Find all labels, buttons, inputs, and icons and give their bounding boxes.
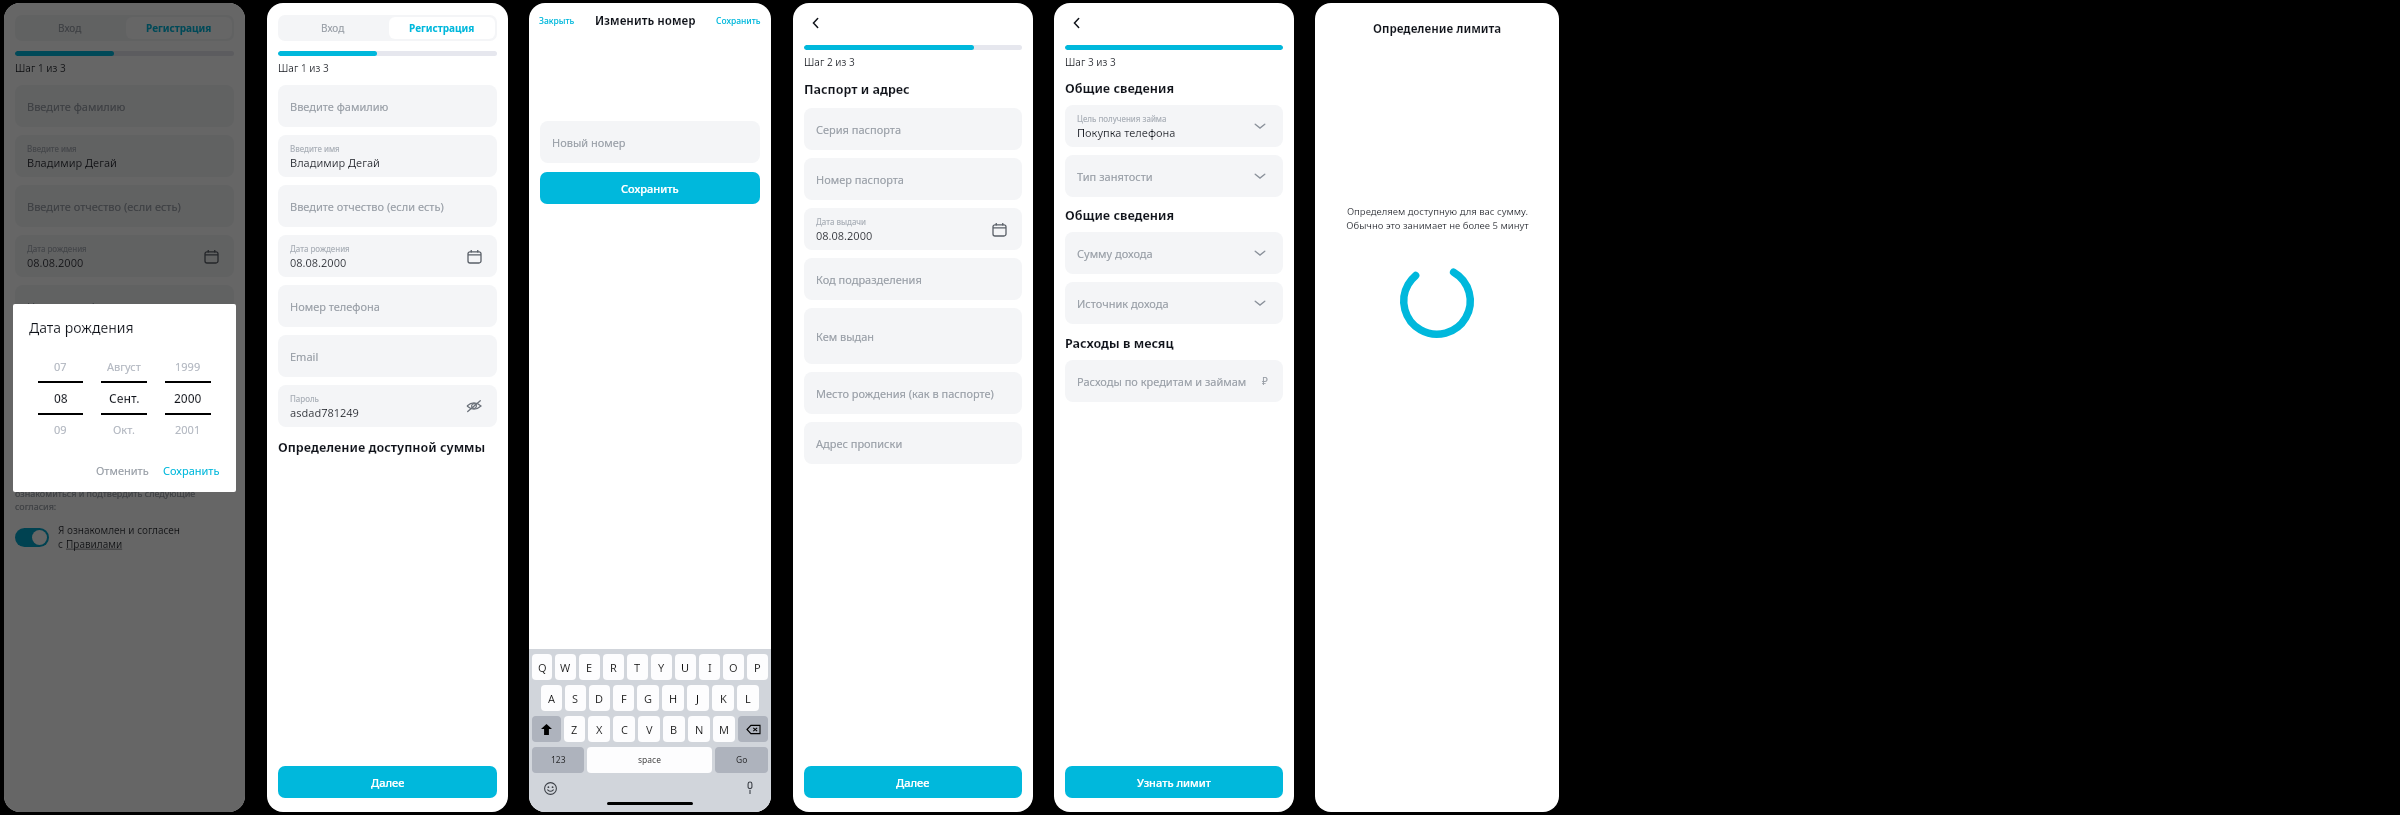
button[interactable]: Выбрать дату: [200, 245, 222, 267]
staticText: 123: [551, 754, 566, 766]
button[interactable]: Пароль: [278, 385, 497, 427]
button[interactable]: B: [663, 716, 685, 742]
button[interactable]: A: [541, 685, 562, 711]
button[interactable]: Раскрыть список: [1249, 242, 1271, 264]
staticText: Шаг 1 из 3: [15, 61, 66, 75]
button[interactable]: Далее: [278, 766, 497, 798]
button[interactable]: Дата рождения: [278, 235, 497, 277]
button[interactable]: Номер паспорта: [804, 158, 1022, 200]
button[interactable]: Назад: [804, 11, 828, 35]
button[interactable]: Новый номер: [540, 121, 760, 163]
button[interactable]: Код подразделения: [804, 258, 1022, 300]
button[interactable]: Адрес прописки: [804, 422, 1022, 464]
button[interactable]: R: [603, 654, 624, 680]
button[interactable]: Согласие: [15, 528, 49, 547]
button[interactable]: Кем выдан: [804, 308, 1022, 364]
button[interactable]: Email: [278, 335, 497, 377]
button[interactable]: X: [588, 716, 610, 742]
button[interactable]: O: [723, 654, 744, 680]
button[interactable]: T: [627, 654, 648, 680]
button[interactable]: 123: [532, 747, 584, 773]
staticText: Шаг 1 из 3: [278, 61, 329, 75]
button[interactable]: Введите фамилию: [15, 85, 234, 127]
button[interactable]: I: [699, 654, 720, 680]
button[interactable]: G: [637, 685, 659, 711]
button[interactable]: J: [687, 685, 709, 711]
button[interactable]: Закрыть: [539, 15, 575, 27]
staticText: Определение доступной суммы: [278, 439, 486, 456]
button[interactable]: Пароль: [15, 385, 234, 427]
staticText: ₽: [1262, 374, 1268, 388]
button[interactable]: Раскрыть список: [1249, 115, 1271, 137]
button[interactable]: Введите имя: [15, 135, 234, 177]
button[interactable]: Вход: [17, 17, 122, 39]
button[interactable]: Удалить: [738, 716, 768, 742]
button[interactable]: Тип занятости: [1065, 155, 1283, 197]
button[interactable]: C: [613, 716, 635, 742]
button[interactable]: Выбрать дату: [988, 218, 1010, 240]
button[interactable]: Сохранить: [716, 15, 761, 27]
button[interactable]: Далее: [804, 766, 1022, 798]
button[interactable]: Место рождения (как в паспорте): [804, 372, 1022, 414]
button[interactable]: L: [737, 685, 759, 711]
button[interactable]: E: [579, 654, 600, 680]
staticText: Email: [290, 349, 319, 364]
button[interactable]: P: [747, 654, 768, 680]
button[interactable]: Регистрация: [126, 17, 232, 39]
button[interactable]: Введите отчество (если есть): [278, 185, 497, 227]
button[interactable]: Email: [15, 335, 234, 377]
staticText: Код подразделения: [816, 272, 922, 287]
button[interactable]: Сохранить: [540, 172, 760, 204]
button[interactable]: Расходы по кредитам и займам: [1065, 360, 1283, 402]
button[interactable]: Y: [651, 654, 672, 680]
button[interactable]: Назад: [1065, 11, 1089, 35]
button[interactable]: Shift: [532, 716, 561, 742]
button[interactable]: U: [675, 654, 696, 680]
staticText: Дата рождения: [27, 243, 87, 254]
staticText: Y: [658, 660, 665, 675]
staticText: Сумму дохода: [1077, 246, 1153, 261]
button[interactable]: Номер телефона: [15, 285, 234, 327]
button[interactable]: Q: [532, 654, 552, 680]
staticText: H: [669, 691, 678, 706]
button[interactable]: Введите отчество (если есть): [15, 185, 234, 227]
button[interactable]: Дата рождения: [15, 235, 234, 277]
button[interactable]: Выбрать дату: [463, 245, 485, 267]
staticText: Общие сведения: [1065, 207, 1175, 224]
button[interactable]: Дата выдачи: [804, 208, 1022, 250]
button[interactable]: D: [589, 685, 610, 711]
button[interactable]: Вход: [280, 17, 385, 39]
button[interactable]: Источник дохода: [1065, 282, 1283, 324]
button[interactable]: V: [638, 716, 660, 742]
button[interactable]: Правилами: [66, 537, 123, 551]
button[interactable]: Введите имя: [278, 135, 497, 177]
button[interactable]: Регистрация: [389, 17, 495, 39]
staticText: Далее: [896, 775, 930, 790]
button[interactable]: Номер телефона: [278, 285, 497, 327]
button[interactable]: Сохранить: [163, 463, 220, 478]
button[interactable]: Серия паспорта: [804, 108, 1022, 150]
button[interactable]: S: [565, 685, 586, 711]
button[interactable]: space: [587, 747, 712, 773]
staticText: 08.08.2000: [290, 255, 347, 270]
button[interactable]: Цель получения займа: [1065, 105, 1283, 147]
button[interactable]: H: [662, 685, 684, 711]
button[interactable]: N: [688, 716, 710, 742]
button[interactable]: Отменить: [96, 463, 149, 478]
button[interactable]: M: [713, 716, 735, 742]
button[interactable]: F: [613, 685, 634, 711]
button[interactable]: Сумму дохода: [1065, 232, 1283, 274]
button[interactable]: W: [555, 654, 576, 680]
button[interactable]: Z: [564, 716, 585, 742]
button[interactable]: Показать пароль: [202, 396, 222, 416]
button[interactable]: Эмодзи: [541, 779, 559, 797]
button[interactable]: K: [712, 685, 734, 711]
button[interactable]: Раскрыть список: [1249, 292, 1271, 314]
button[interactable]: Раскрыть список: [1249, 165, 1271, 187]
button[interactable]: Диктовка: [741, 779, 759, 797]
button[interactable]: Показать пароль: [463, 395, 485, 417]
button[interactable]: Go: [715, 747, 768, 773]
button[interactable]: Введите фамилию: [278, 85, 497, 127]
button[interactable]: Узнать лимит: [1065, 766, 1283, 798]
staticText: с: [58, 537, 66, 551]
